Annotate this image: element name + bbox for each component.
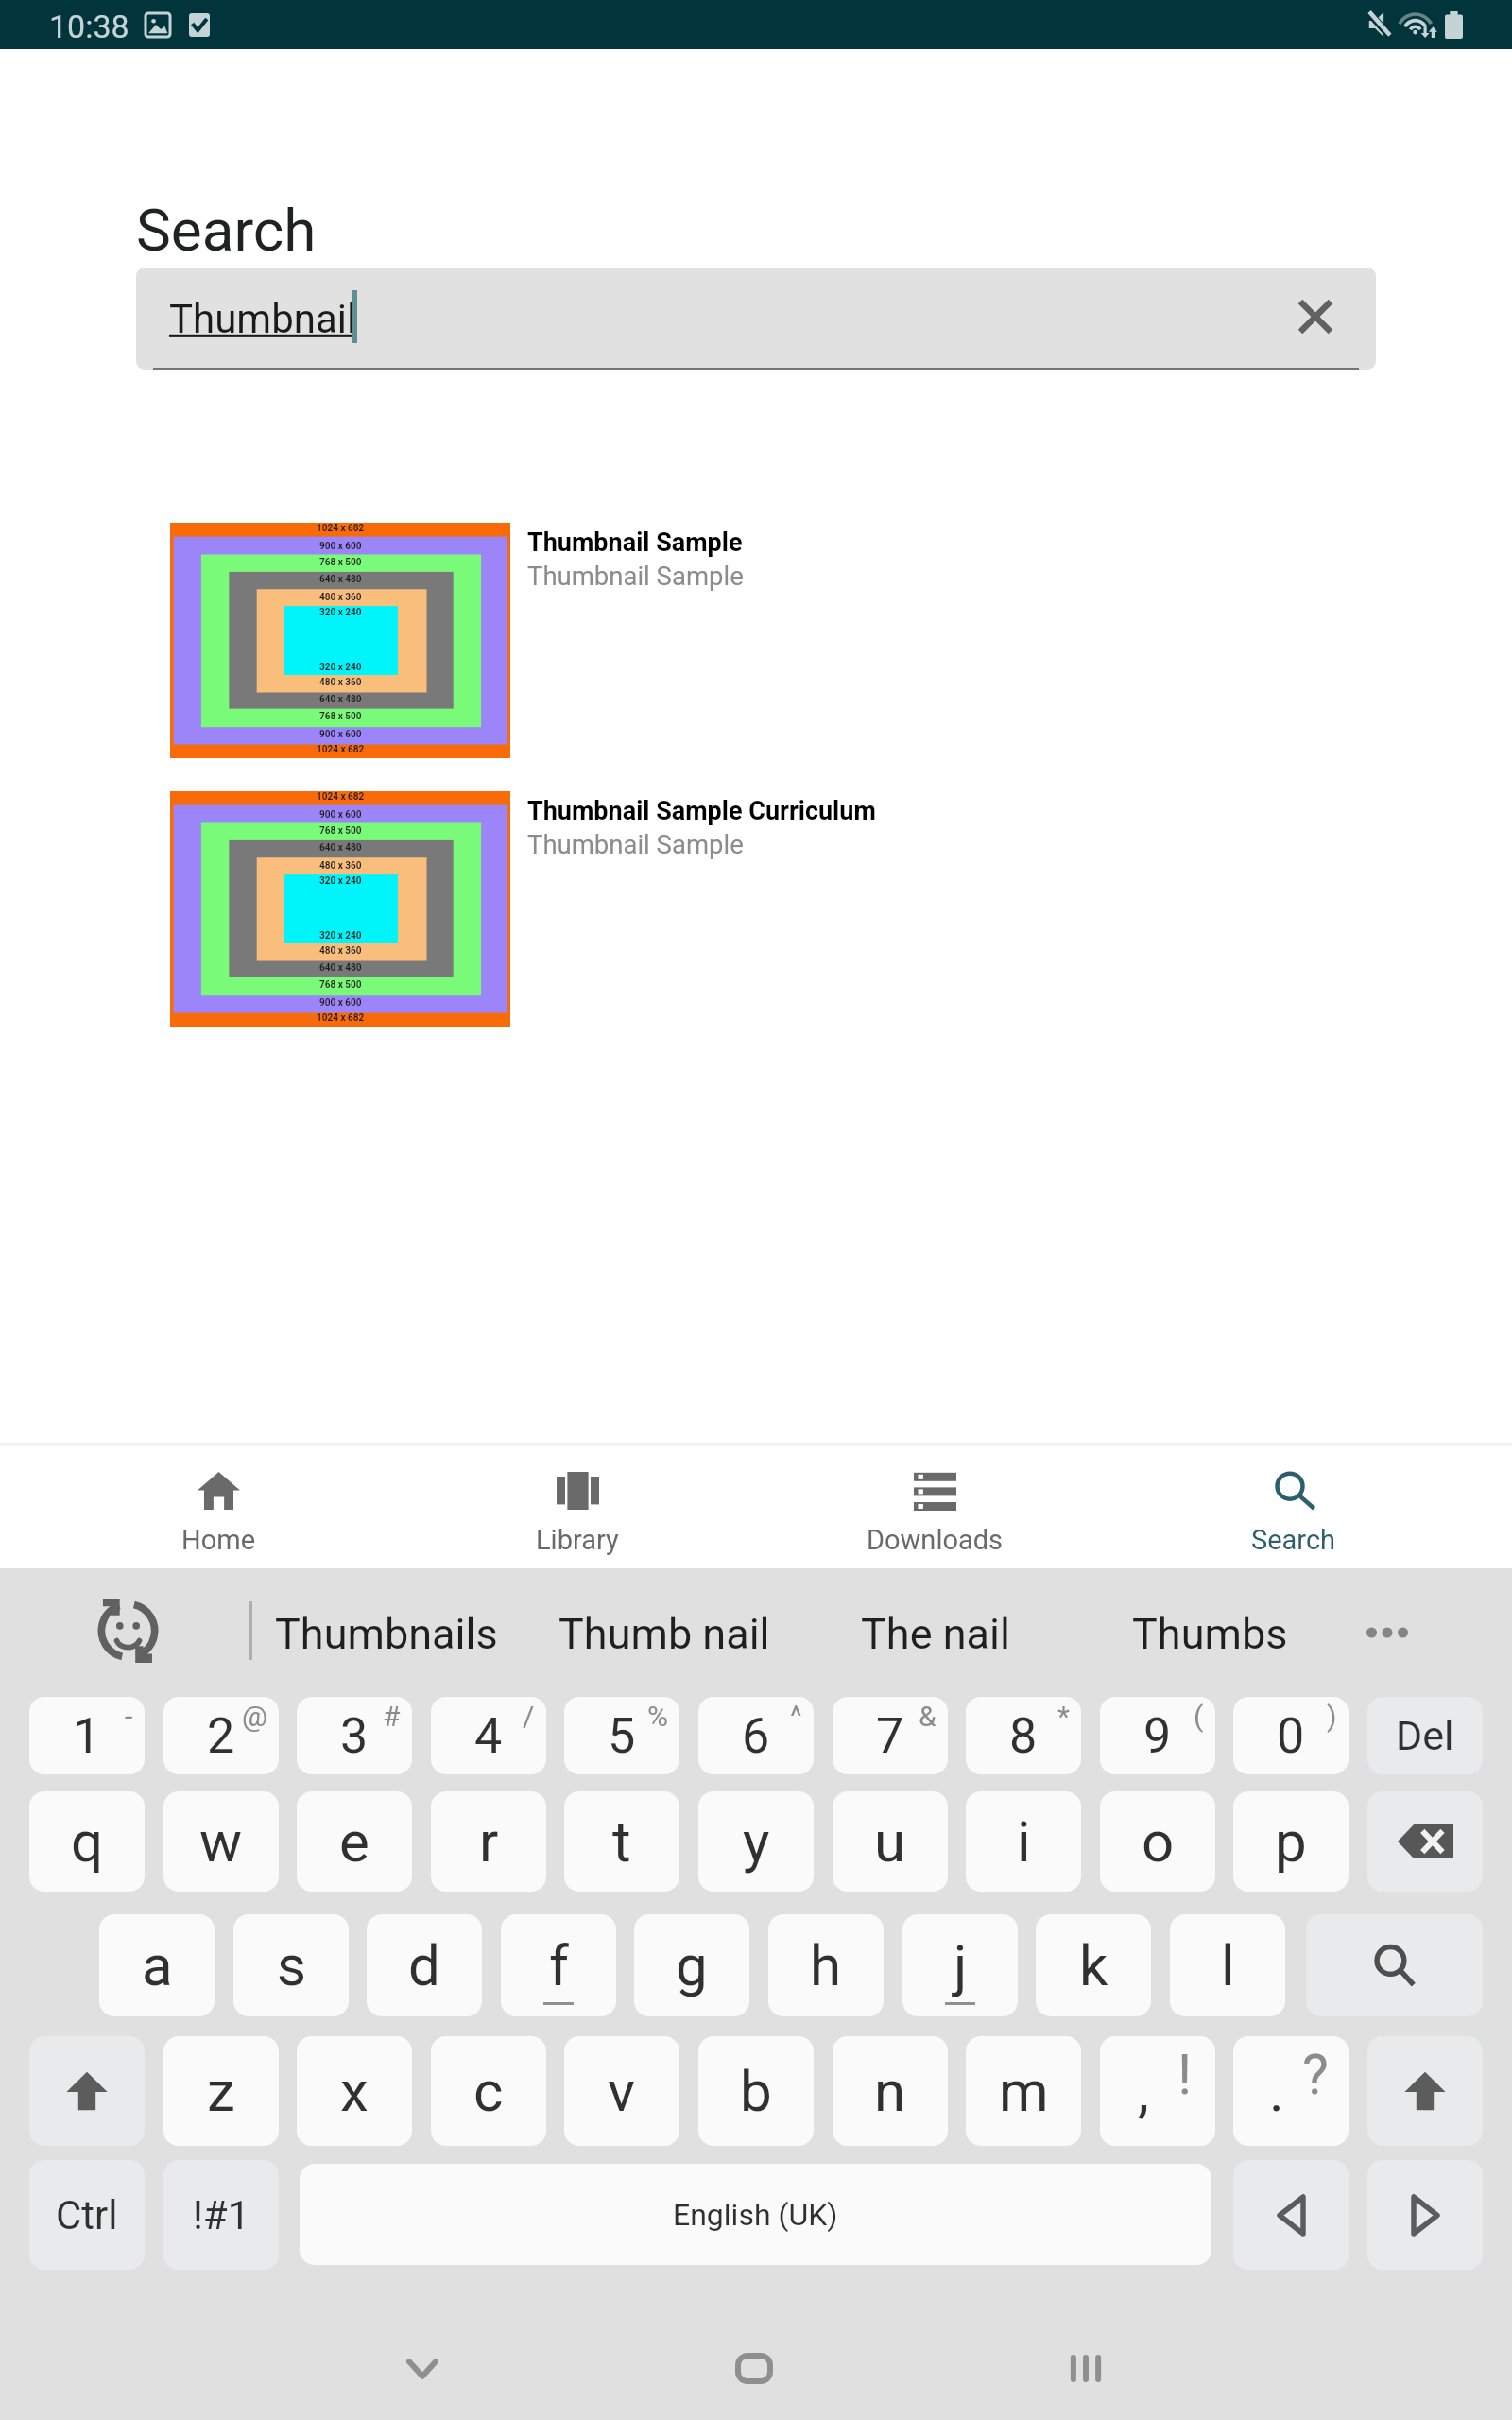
button[interactable]: Search	[1114, 1446, 1472, 1568]
staticText: 480 x 360	[319, 860, 362, 872]
button[interactable]: Thumbnails	[254, 1596, 519, 1671]
button[interactable]: o	[1100, 1791, 1215, 1892]
button[interactable]: Ctrl	[29, 2160, 145, 2270]
button[interactable]: 1	[29, 1697, 145, 1774]
button[interactable]: 5	[564, 1697, 679, 1774]
button[interactable]: More suggestions	[1364, 1614, 1411, 1651]
button[interactable]: Thumbs	[1077, 1596, 1342, 1671]
button[interactable]: a	[99, 1914, 215, 2016]
button[interactable]: t	[564, 1791, 679, 1892]
staticText: a	[142, 1932, 173, 1998]
button[interactable]: Del	[1367, 1697, 1483, 1774]
staticText: t	[612, 1808, 631, 1875]
button[interactable]: 8	[966, 1697, 1081, 1774]
button[interactable]: Shift	[29, 2036, 145, 2146]
button[interactable]: 1024 x 682	[170, 791, 510, 1027]
button[interactable]: j	[902, 1914, 1018, 2016]
staticText: ,	[1138, 2058, 1149, 2124]
button[interactable]: l	[1170, 1914, 1285, 2016]
button[interactable]: x	[297, 2036, 412, 2146]
button[interactable]: f	[501, 1914, 616, 2016]
staticText: j	[954, 1932, 968, 1998]
staticText: !#1	[193, 2192, 250, 2238]
button[interactable]: w	[163, 1791, 279, 1892]
button[interactable]: d	[367, 1914, 482, 2016]
button[interactable]: m	[966, 2036, 1081, 2146]
staticText: 320 x 240	[319, 875, 362, 887]
button[interactable]: Clear search	[1297, 299, 1333, 335]
button[interactable]: Backspace	[1367, 1791, 1483, 1892]
staticText: 320 x 240	[319, 930, 362, 942]
button[interactable]: !#1	[163, 2160, 279, 2270]
staticText: Ctrl	[56, 2192, 118, 2238]
button[interactable]: Shift	[1367, 2036, 1483, 2146]
staticText: 6	[742, 1707, 770, 1765]
button[interactable]: 9	[1100, 1697, 1215, 1774]
button[interactable]: u	[833, 1791, 948, 1892]
button[interactable]: 1024 x 682	[170, 523, 510, 758]
staticText: 900 x 600	[319, 809, 362, 821]
button[interactable]: .	[1233, 2036, 1349, 2146]
button[interactable]: Back	[337, 2321, 507, 2415]
button[interactable]: Thumb nail	[532, 1596, 797, 1671]
button[interactable]: 3	[297, 1697, 412, 1774]
staticText: 1	[73, 1707, 101, 1765]
button[interactable]: Home	[669, 2321, 839, 2415]
staticText: i	[1017, 1808, 1031, 1875]
button[interactable]: 0	[1233, 1697, 1349, 1774]
staticText: u	[874, 1808, 906, 1875]
button[interactable]: z	[163, 2036, 279, 2146]
button[interactable]: b	[698, 2036, 814, 2146]
staticText: 640 x 480	[319, 842, 362, 854]
button[interactable]: Library	[398, 1446, 756, 1568]
staticText: Thumbnails	[275, 1609, 498, 1659]
button[interactable]: c	[431, 2036, 546, 2146]
button[interactable]: Recent apps	[1001, 2321, 1171, 2415]
button[interactable]: Thumbnail Sample	[527, 527, 1378, 603]
button[interactable]: English (UK)	[300, 2164, 1211, 2265]
staticText: s	[277, 1932, 306, 1998]
staticText: o	[1142, 1808, 1175, 1875]
button[interactable]: k	[1036, 1914, 1151, 2016]
button[interactable]: q	[29, 1791, 145, 1892]
button[interactable]: s	[233, 1914, 349, 2016]
button[interactable]: i	[966, 1791, 1081, 1892]
button[interactable]: Search	[1306, 1914, 1483, 2016]
staticText: 3	[340, 1707, 369, 1765]
button[interactable]: Thumbnail Sample Curriculum	[527, 796, 1378, 872]
staticText: 320 x 240	[319, 662, 362, 673]
staticText: Thumbs	[1132, 1609, 1288, 1659]
button[interactable]: 2	[163, 1697, 279, 1774]
button[interactable]: y	[698, 1791, 814, 1892]
staticText: .	[1269, 2058, 1284, 2124]
button[interactable]: Downloads	[756, 1446, 1114, 1568]
button[interactable]: ,	[1100, 2036, 1215, 2146]
staticText: &	[919, 1700, 936, 1733]
staticText: *	[1057, 1700, 1070, 1733]
button[interactable]: g	[634, 1914, 749, 2016]
staticText: v	[608, 2058, 636, 2124]
button[interactable]: r	[431, 1791, 546, 1892]
button[interactable]: p	[1233, 1791, 1349, 1892]
staticText: 7	[876, 1707, 904, 1765]
staticText: 768 x 500	[319, 979, 362, 991]
button[interactable]: 4	[431, 1697, 546, 1774]
staticText: 640 x 480	[319, 574, 362, 585]
staticText: e	[339, 1808, 369, 1875]
button[interactable]: e	[297, 1791, 412, 1892]
button[interactable]: The nail	[803, 1596, 1068, 1671]
button[interactable]: Cursor right	[1367, 2160, 1483, 2270]
staticText: 900 x 600	[319, 541, 362, 552]
button[interactable]: Home	[40, 1446, 398, 1568]
button[interactable]: n	[833, 2036, 948, 2146]
button[interactable]: Emoji keyboard	[96, 1599, 160, 1663]
staticText: 4	[474, 1707, 503, 1765]
button[interactable]: Cursor left	[1233, 2160, 1349, 2270]
button[interactable]: Thumbnail	[136, 268, 1376, 370]
staticText: 900 x 600	[319, 997, 362, 1009]
button[interactable]: h	[768, 1914, 884, 2016]
button[interactable]: 7	[833, 1697, 948, 1774]
button[interactable]: 6	[698, 1697, 814, 1774]
button[interactable]: v	[564, 2036, 679, 2146]
staticText: 1024 x 682	[317, 744, 365, 755]
